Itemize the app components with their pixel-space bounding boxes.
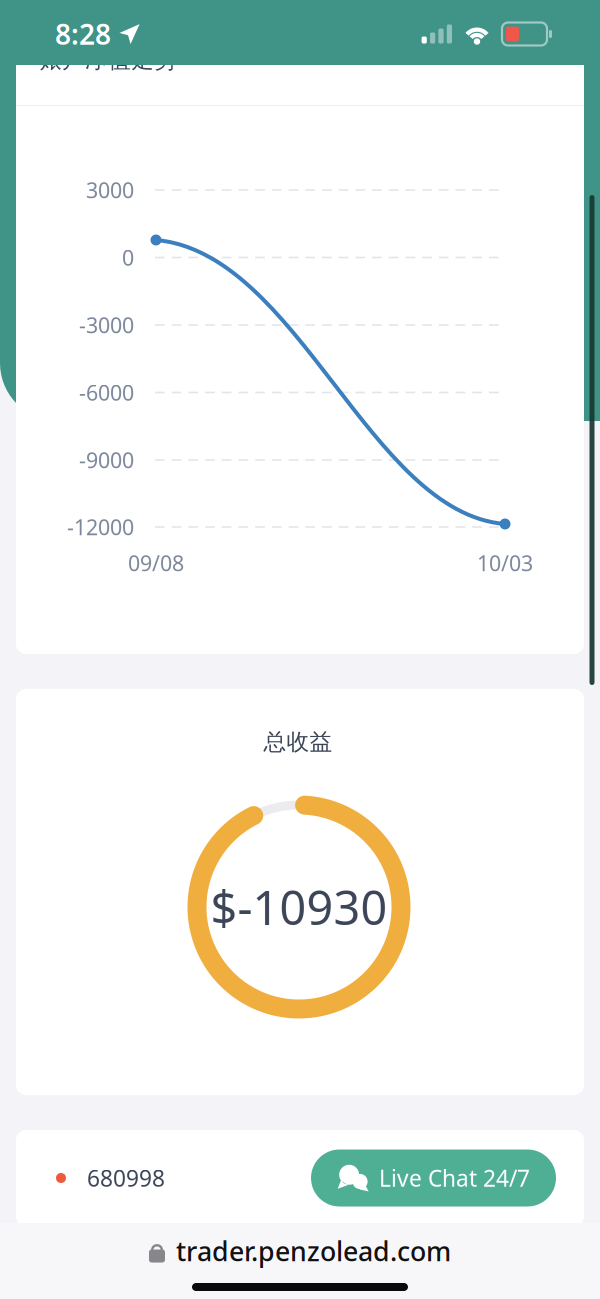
button[interactable]: trader.penzolead.com bbox=[0, 1227, 600, 1275]
staticText: -6000 bbox=[79, 378, 134, 407]
staticText: Live Chat 24/7 bbox=[379, 1163, 530, 1193]
staticText: 10/03 bbox=[477, 549, 533, 577]
staticText: trader.penzolead.com bbox=[176, 1233, 451, 1269]
staticText: 09/08 bbox=[128, 549, 184, 577]
staticText: 总收益 bbox=[263, 728, 332, 756]
staticText: $-10930 bbox=[210, 876, 387, 938]
staticText: 8:28 bbox=[55, 15, 111, 53]
staticText: -3000 bbox=[79, 311, 134, 339]
staticText: 3000 bbox=[86, 176, 134, 204]
staticText: -9000 bbox=[79, 446, 134, 474]
staticText: 680998 bbox=[87, 1163, 165, 1193]
staticText: 0 bbox=[122, 243, 134, 272]
staticText: 账户净值走势 bbox=[39, 46, 177, 74]
staticText: -12000 bbox=[67, 513, 134, 541]
button[interactable]: Live Chat 24/7 bbox=[311, 1149, 556, 1206]
